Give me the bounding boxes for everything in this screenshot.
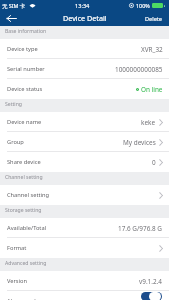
staticText: Group [7, 138, 24, 146]
staticText: Serial number [7, 65, 45, 73]
button[interactable]: Group [0, 132, 169, 152]
button[interactable]: Format [0, 238, 169, 258]
staticText: Alarm push [7, 297, 38, 300]
staticText: Advanced setting [5, 260, 47, 267]
staticText: 1000000000085 [115, 65, 163, 74]
staticText: XVR_32 [141, 45, 163, 54]
staticText: Base information [5, 28, 47, 35]
button[interactable]: Serial number [0, 59, 169, 79]
staticText: Storage setting [5, 207, 42, 214]
staticText: Available/Total [7, 224, 47, 232]
staticText: Device type [7, 45, 38, 53]
staticText: Device name [7, 118, 42, 126]
staticText: My devices [123, 138, 156, 147]
staticText: Device Detail [63, 13, 107, 23]
button[interactable]: Available/Total [0, 218, 169, 238]
staticText: Setting [5, 101, 22, 108]
button[interactable]: Back [0, 11, 22, 26]
staticText: 17.6 G/976.8 G [118, 224, 163, 233]
button[interactable]: Alarm push [0, 291, 169, 300]
staticText: Device status [7, 85, 43, 93]
button[interactable]: Share device [0, 152, 169, 172]
button[interactable]: Device type [0, 39, 169, 59]
staticText: On line [141, 85, 163, 94]
staticText: 0 [152, 158, 156, 167]
staticText: Channel setting [5, 174, 43, 181]
staticText: keke [141, 118, 156, 127]
staticText: v9.1.2.4 [139, 277, 163, 286]
button[interactable]: Version [0, 271, 169, 291]
staticText: 13:34 [75, 2, 90, 10]
staticText: 无 SIM 卡 [2, 2, 26, 9]
staticText: Format [7, 244, 27, 252]
staticText: 100% [136, 2, 150, 9]
button[interactable]: Channel setting [0, 185, 169, 205]
staticText: Channel setting [7, 191, 50, 199]
button[interactable]: Delete [139, 11, 169, 26]
staticText: Delete [145, 15, 163, 23]
staticText: Version [7, 277, 28, 285]
button[interactable]: Device name [0, 112, 169, 132]
staticText: Share device [7, 158, 41, 166]
button[interactable]: Device status [0, 79, 169, 99]
